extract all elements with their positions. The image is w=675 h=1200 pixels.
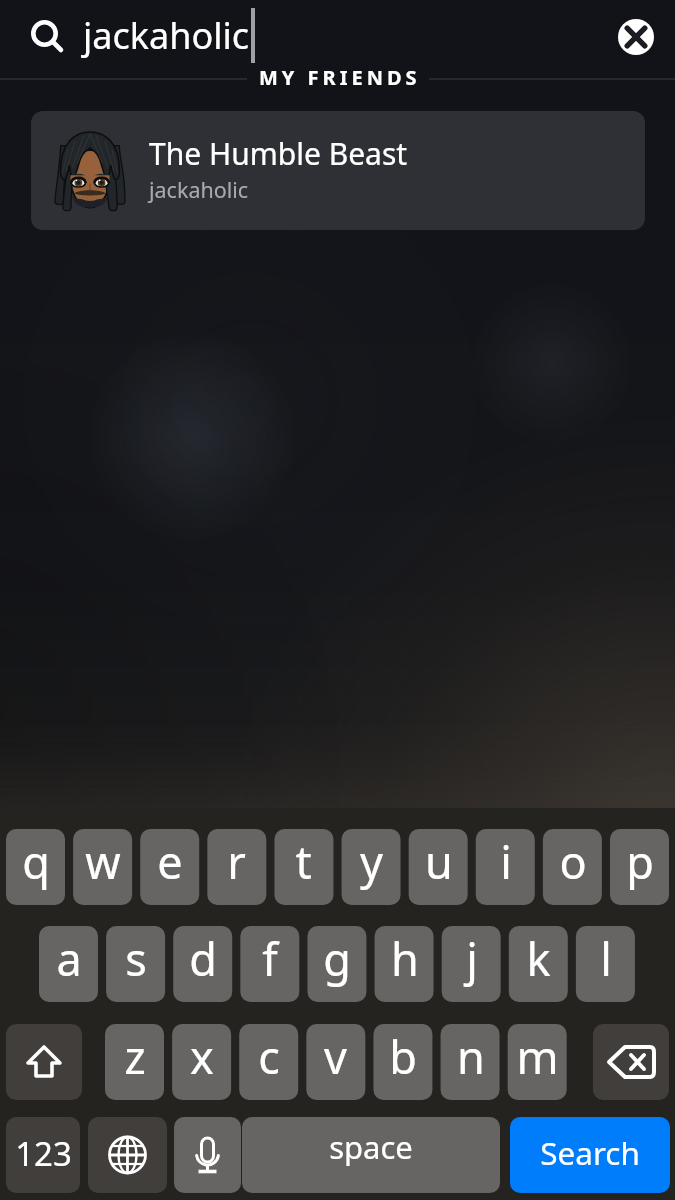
staticText: g [323,928,351,989]
staticText: n [457,1026,485,1087]
button[interactable]: jackaholic [0,0,618,71]
button[interactable]: o [543,829,602,905]
button[interactable]: Search [510,1117,670,1193]
button[interactable]: w [73,829,132,905]
button[interactable]: g [307,926,366,1002]
button[interactable]: 123 [6,1117,80,1193]
button[interactable]: r [207,829,266,905]
staticText: e [157,831,183,892]
button[interactable]: c [239,1024,298,1100]
staticText: MY FRIENDS [259,64,421,91]
staticText: s [125,928,147,989]
button[interactable]: l [576,926,635,1002]
button[interactable]: v [306,1024,365,1100]
staticText: Search [540,1131,640,1174]
button[interactable]: q [6,829,65,905]
button[interactable]: z [105,1024,164,1100]
button[interactable]: u [409,829,468,905]
button[interactable]: y [342,829,401,905]
staticText: t [295,831,312,892]
staticText: f [262,928,278,989]
button[interactable]: f [240,926,299,1002]
button[interactable]: space [242,1117,500,1193]
staticText: z [124,1026,146,1087]
staticText: u [425,831,453,892]
button[interactable]: The Humble Beast [31,111,645,230]
button[interactable]: Voice input [174,1117,241,1193]
staticText: o [559,831,587,892]
staticText: l [600,928,612,989]
button[interactable]: t [274,829,333,905]
button[interactable]: h [375,926,434,1002]
button[interactable]: Change keyboard language [88,1117,167,1193]
staticText: k [526,928,551,989]
staticText: m [516,1026,559,1087]
button[interactable]: p [610,829,669,905]
staticText: y [360,831,383,892]
button[interactable]: a [39,926,98,1002]
button[interactable]: b [373,1024,432,1100]
button[interactable]: Backspace [593,1024,669,1100]
button[interactable]: Shift [6,1024,82,1100]
staticText: w [85,831,121,892]
staticText: x [190,1026,214,1087]
button[interactable]: k [509,926,568,1002]
button[interactable]: e [140,829,199,905]
staticText: b [389,1026,417,1087]
button[interactable]: d [173,926,232,1002]
staticText: d [189,928,217,989]
button[interactable]: i [476,829,535,905]
staticText: j [466,928,478,989]
button[interactable]: Clear search [618,19,654,55]
staticText: q [22,831,50,892]
button[interactable]: s [106,926,165,1002]
staticText: 123 [15,1131,72,1176]
staticText: i [500,831,512,892]
staticText: r [227,831,246,892]
staticText: The Humble Beast [149,133,408,174]
staticText: space [329,1126,413,1168]
staticText: v [324,1026,347,1087]
button[interactable]: j [442,926,501,1002]
staticText: c [258,1026,280,1087]
button[interactable]: x [172,1024,231,1100]
staticText: h [391,928,419,989]
staticText: a [56,928,82,989]
button[interactable]: m [508,1024,567,1100]
button[interactable]: n [441,1024,500,1100]
staticText: jackaholic [83,11,250,60]
staticText: p [626,831,654,892]
staticText: jackaholic [149,175,249,204]
